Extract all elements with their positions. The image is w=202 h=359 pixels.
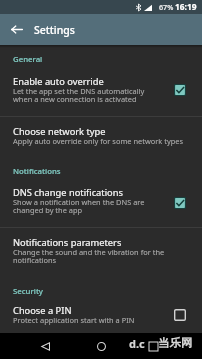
staticText: 67% bbox=[159, 2, 174, 12]
staticText: Notifications bbox=[13, 166, 61, 177]
button[interactable]: Recent apps bbox=[140, 333, 167, 359]
button[interactable]: Enable auto override bbox=[0, 66, 202, 115]
staticText: General bbox=[13, 54, 43, 65]
staticText: Protect application start with a PIN bbox=[13, 315, 135, 325]
button[interactable]: Checked checkbox bbox=[174, 84, 186, 96]
button[interactable]: DNS change notifications bbox=[0, 178, 202, 227]
button[interactable]: Back bbox=[32, 333, 59, 359]
staticText: Show a notification when the DNS are cha… bbox=[13, 197, 145, 215]
staticText: Notifications parameters bbox=[13, 236, 122, 249]
button[interactable]: Choose network type bbox=[0, 117, 202, 168]
button[interactable]: Home bbox=[88, 333, 115, 359]
staticText: Let the app set the DNS automatically wh… bbox=[13, 86, 145, 104]
staticText: Choose network type bbox=[13, 125, 106, 138]
staticText: 16:19 bbox=[175, 1, 197, 12]
staticText: d.c bbox=[129, 336, 145, 351]
button[interactable]: Unchecked checkbox bbox=[174, 309, 186, 321]
button[interactable]: Navigate up bbox=[5, 17, 29, 41]
staticText: Choose a PIN bbox=[13, 304, 72, 317]
staticText: Settings bbox=[34, 23, 75, 37]
staticText: 当乐网 bbox=[158, 336, 193, 350]
button[interactable]: Checked checkbox bbox=[174, 197, 186, 209]
button[interactable]: Notifications parameters bbox=[0, 228, 202, 278]
staticText: Enable auto override bbox=[13, 75, 104, 88]
staticText: DNS change notifications bbox=[13, 186, 123, 199]
staticText: Change the sound and the vibration for t… bbox=[13, 247, 165, 265]
staticText: Security bbox=[13, 286, 43, 297]
button[interactable]: Choose a PIN bbox=[0, 297, 202, 331]
staticText: Apply auto override only for some networ… bbox=[13, 136, 184, 146]
